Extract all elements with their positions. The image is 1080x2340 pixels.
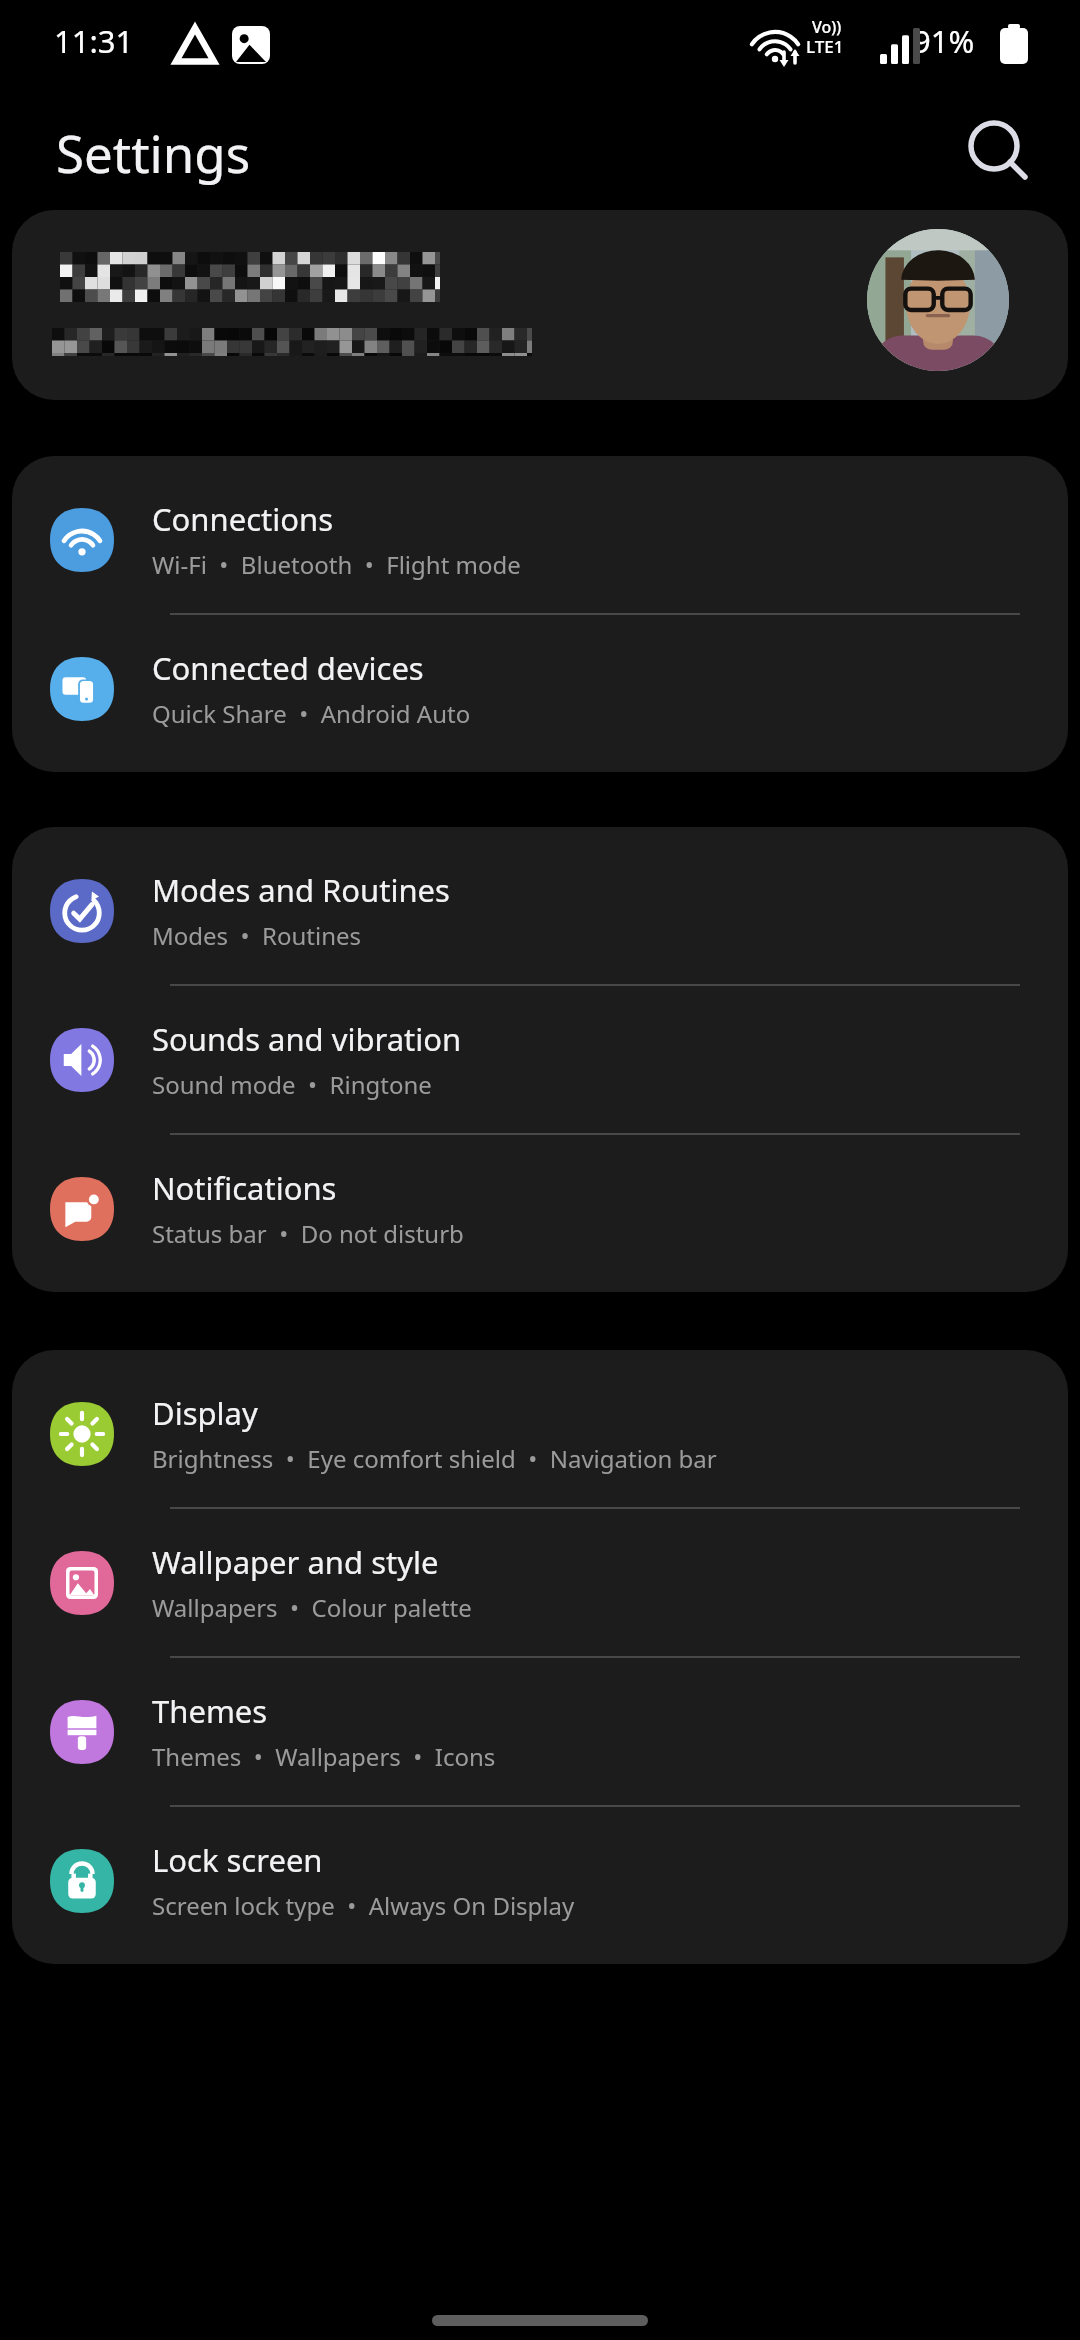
button[interactable]: Sounds and vibration [12, 986, 1068, 1133]
button[interactable] [12, 210, 1068, 400]
button[interactable]: Wallpaper and style [12, 1509, 1068, 1656]
button[interactable]: Search [948, 106, 1044, 202]
staticText: Lock screen [152, 1839, 323, 1881]
button[interactable]: Lock screen [12, 1807, 1068, 1964]
staticText: Modes and Routines [152, 869, 450, 911]
staticText: Screen lock type • Always On Display [152, 1889, 575, 1922]
button[interactable]: Connections [12, 456, 1068, 613]
staticText: Themes • Wallpapers • Icons [152, 1740, 496, 1773]
staticText: Display [152, 1392, 258, 1434]
button[interactable]: Display [12, 1350, 1068, 1507]
staticText: Status bar • Do not disturb [152, 1217, 464, 1250]
staticText: Sounds and vibration [152, 1018, 462, 1060]
staticText: Wi-Fi • Bluetooth • Flight mode [152, 548, 521, 581]
staticText: LTE1 [806, 35, 844, 58]
staticText: Wallpapers • Colour palette [152, 1591, 472, 1624]
button[interactable]: Modes and Routines [12, 827, 1068, 984]
button[interactable]: Themes [12, 1658, 1068, 1805]
staticText: 11:31 [54, 20, 134, 62]
staticText: Notifications [152, 1167, 337, 1209]
staticText: Vo)) [812, 16, 842, 38]
staticText: Sound mode • Ringtone [152, 1068, 432, 1101]
staticText: Quick Share • Android Auto [152, 697, 471, 730]
staticText: Connected devices [152, 647, 424, 689]
staticText: Modes • Routines [152, 919, 362, 952]
staticText: 91% [913, 20, 975, 62]
button[interactable]: Notifications [12, 1135, 1068, 1292]
staticText: Brightness • Eye comfort shield • Naviga… [152, 1442, 717, 1475]
button[interactable]: Connected devices [12, 615, 1068, 772]
staticText: Connections [152, 498, 333, 540]
staticText: Themes [152, 1690, 268, 1732]
staticText: Settings [56, 118, 251, 187]
staticText: Wallpaper and style [152, 1541, 439, 1583]
